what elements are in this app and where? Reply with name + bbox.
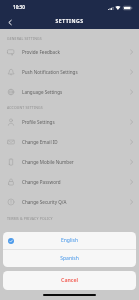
button[interactable]: Change Email ID [0, 132, 139, 152]
staticText: TERMS & PRIVACY POLICY [7, 216, 53, 221]
button[interactable]: Cancel [3, 271, 136, 290]
button[interactable]: Language Settings [0, 82, 139, 102]
staticText: Change Security Q/A [22, 199, 67, 205]
staticText: Spanish [3, 255, 136, 262]
button[interactable]: Spanish [3, 250, 136, 267]
button[interactable]: Change Security Q/A [0, 192, 139, 212]
staticText: GENERAL SETTINGS [7, 36, 42, 41]
staticText: SETTINGS [0, 18, 139, 25]
button[interactable]: Change Mobile Number [0, 152, 139, 172]
button[interactable]: Profile Settings [0, 112, 139, 132]
button[interactable]: English [3, 232, 136, 249]
staticText: ACCOUNT SETTINGS [7, 105, 43, 110]
staticText: Provide Feedback [22, 49, 60, 55]
staticText: Change Email ID [22, 139, 58, 145]
staticText: Language Settings [22, 89, 63, 95]
button[interactable]: Push Notification Settings [0, 62, 139, 82]
staticText: Profile Settings [22, 119, 55, 125]
staticText: Cancel [61, 276, 78, 283]
staticText: Change Mobile Number [22, 159, 74, 165]
button[interactable]: Change Password [0, 172, 139, 192]
staticText: Change Password [22, 179, 61, 185]
staticText: 10:30 [13, 4, 25, 10]
staticText: English [3, 237, 136, 244]
button[interactable]: Back [4, 15, 16, 29]
button[interactable]: Provide Feedback [0, 42, 139, 62]
staticText: Push Notification Settings [22, 69, 78, 75]
